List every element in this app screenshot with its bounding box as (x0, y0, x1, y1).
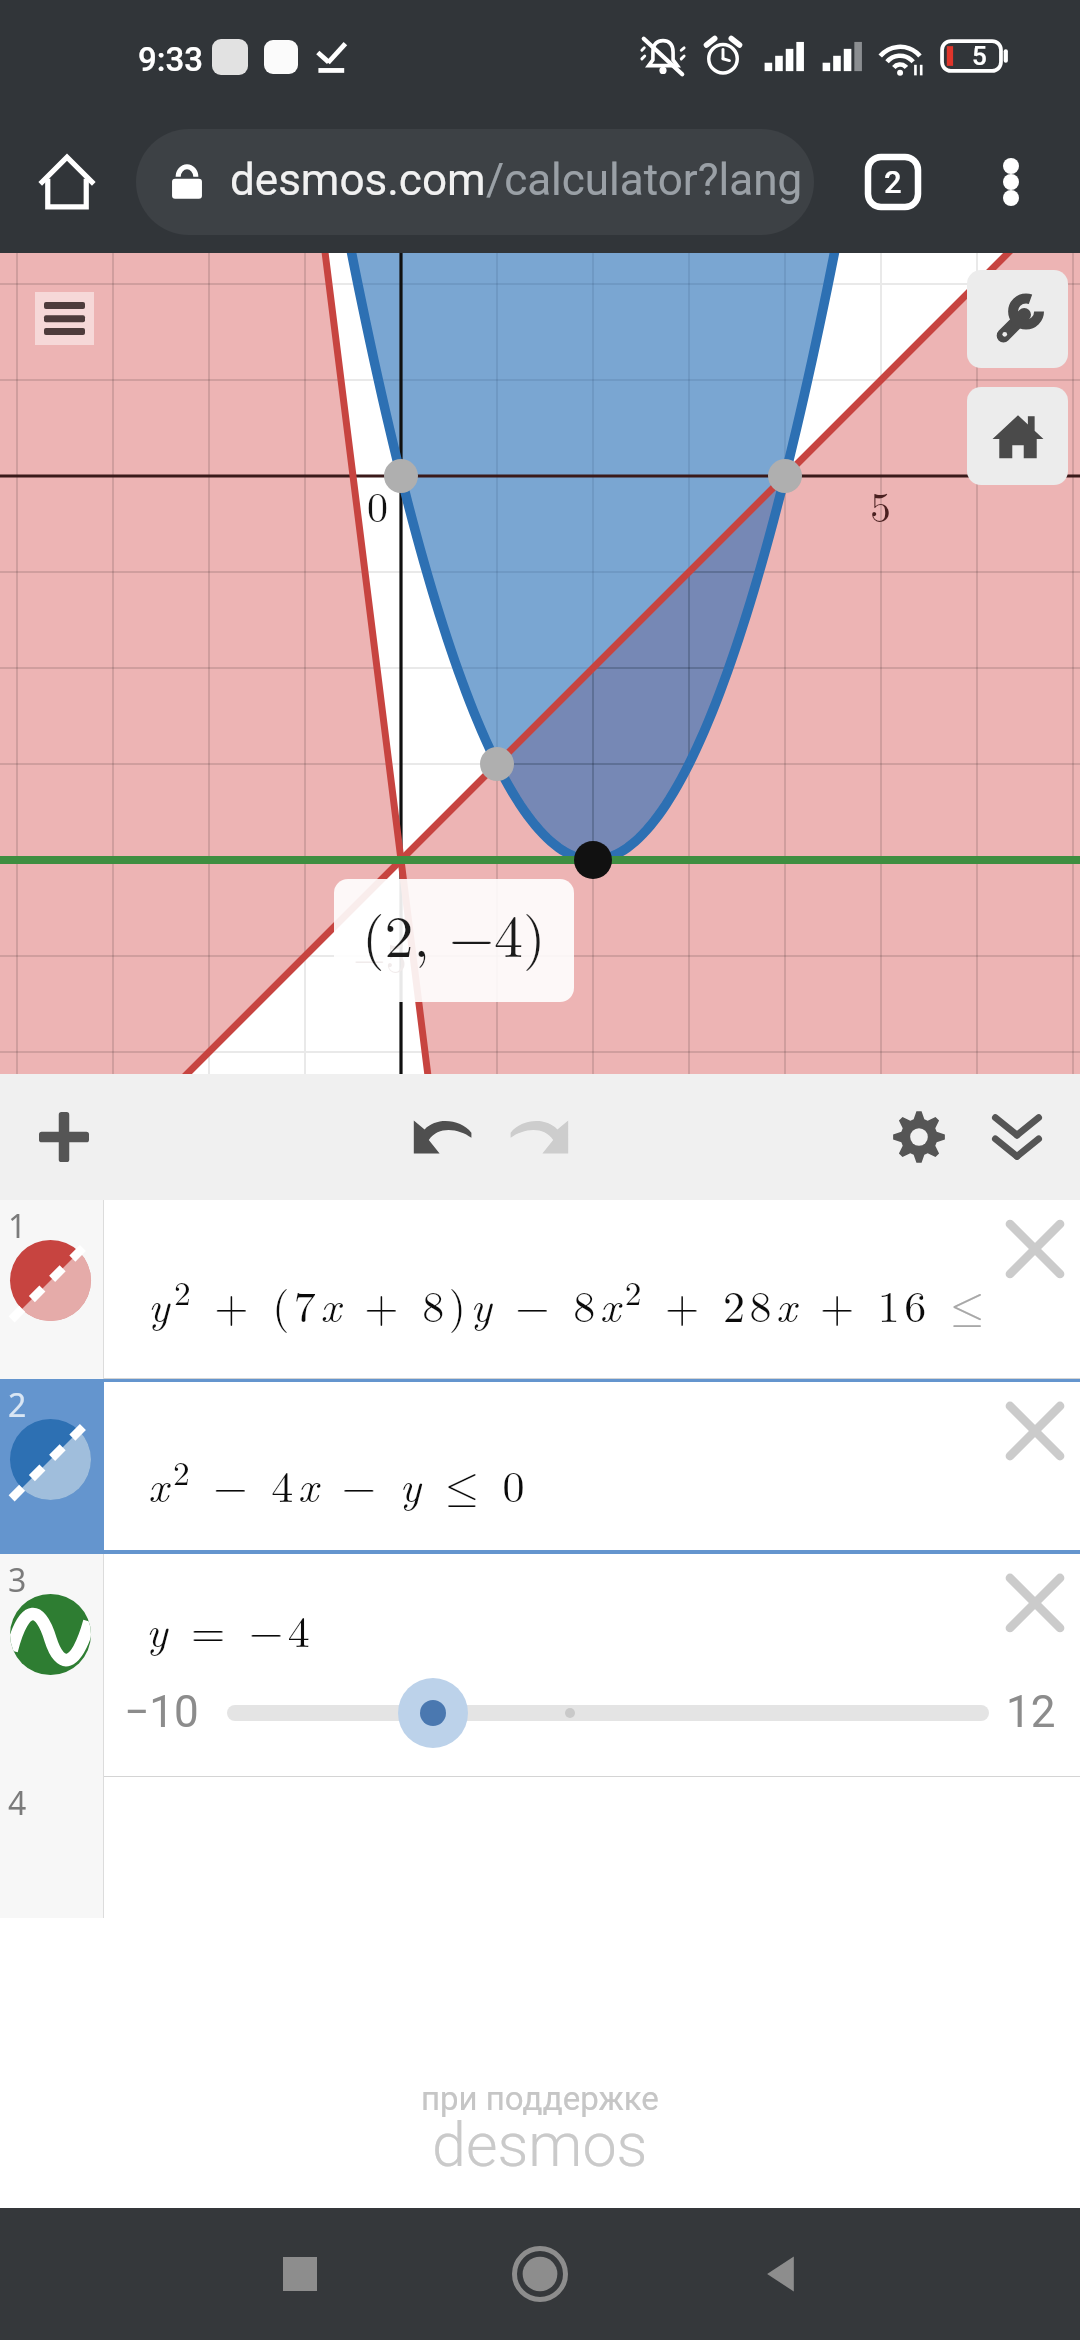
button[interactable]: Address bar (136, 129, 814, 235)
button[interactable]: Home page (28, 143, 106, 221)
staticText: 12 (1006, 1686, 1056, 1738)
button[interactable]: Home (485, 2219, 595, 2329)
button[interactable]: Graph tools (967, 270, 1068, 368)
button[interactable]: Back (725, 2219, 835, 2329)
button[interactable]: Redo (496, 1093, 584, 1181)
button[interactable]: Add expression (20, 1093, 108, 1181)
staticText: /calculator?lang (486, 154, 803, 206)
staticText: x2 − 4x − y ≤ 0 (148, 1447, 530, 1514)
staticText: 3 (8, 1558, 27, 1602)
button[interactable]: Recent apps (245, 2219, 355, 2329)
staticText: y2 + (7x + 8)y − 8x2 + 28x + 16 ≤ (148, 1267, 989, 1334)
staticText: desmos (432, 2109, 648, 2180)
staticText: 2 (884, 164, 902, 200)
staticText: 9:33 (138, 40, 203, 79)
button[interactable]: Open menu (35, 292, 94, 345)
staticText: −10 (124, 1686, 199, 1738)
staticText: 5 (870, 475, 892, 535)
staticText: 5 (972, 41, 987, 71)
button[interactable]: Delete expression 1 (995, 1209, 1075, 1289)
staticText: 1 (8, 1204, 27, 1248)
button[interactable]: Default viewport (967, 387, 1068, 485)
button[interactable]: 1 (0, 1200, 1080, 1379)
button[interactable]: Point label (2, -4) (334, 879, 574, 1002)
button[interactable]: Undo (398, 1093, 486, 1181)
staticText: 2 (8, 1383, 27, 1427)
button[interactable]: Delete expression 2 (995, 1391, 1075, 1471)
button[interactable]: Switch tabs (842, 131, 944, 233)
button[interactable]: 4 (0, 1777, 1080, 1918)
staticText: y = −4 (146, 1597, 315, 1659)
button[interactable]: Delete expression 3 (995, 1563, 1075, 1643)
staticText: −5 (353, 926, 407, 986)
button[interactable]: More options (968, 139, 1054, 225)
staticText: 0 (367, 475, 389, 535)
button[interactable]: Collapse expression list (973, 1093, 1061, 1181)
button[interactable]: 3 (0, 1554, 1080, 1777)
button[interactable]: 2 (0, 1379, 1080, 1554)
button[interactable]: Settings (875, 1093, 963, 1181)
button[interactable]: Slider for -4 (104, 1678, 1080, 1756)
staticText: (2, −4) (362, 892, 546, 974)
staticText: 4 (8, 1781, 27, 1825)
staticText: desmos.com (230, 154, 486, 206)
staticText: при поддержке (421, 2079, 659, 2118)
